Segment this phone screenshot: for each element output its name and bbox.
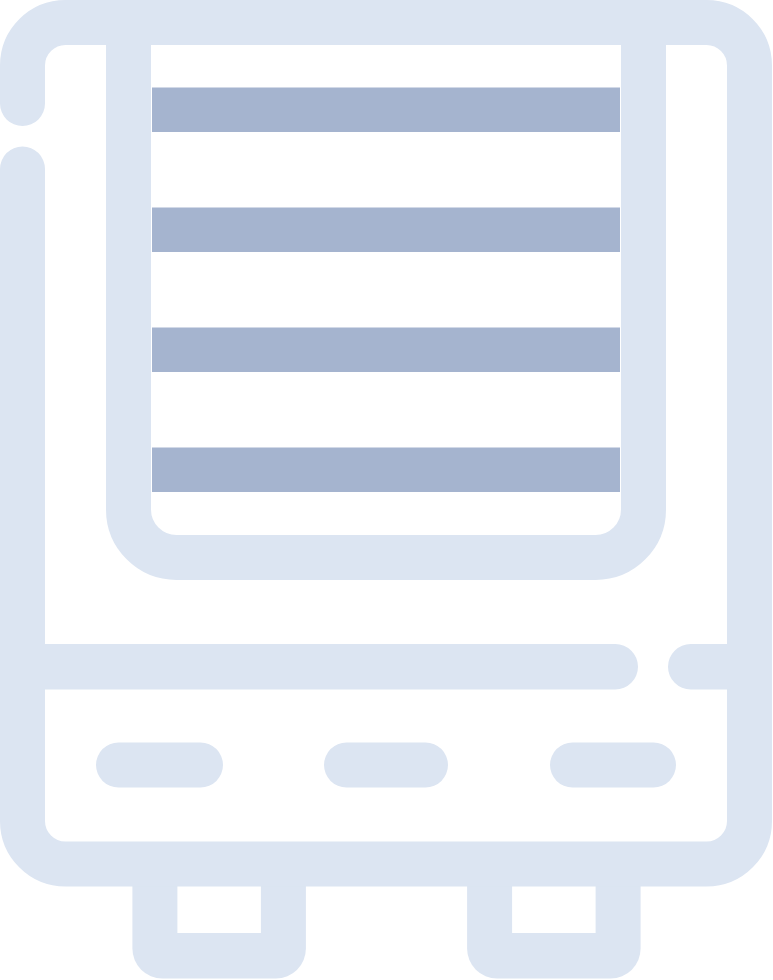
button[interactable]: Ledger book illustration <box>0 0 773 980</box>
